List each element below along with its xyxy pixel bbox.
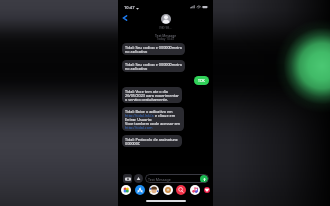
staticText: e clique em (154, 113, 176, 117)
button[interactable]: Tidal: Seu codigo e 000000meira (125, 45, 182, 53)
staticText: no aplicativo (125, 49, 148, 53)
staticText: TDK (198, 78, 205, 83)
staticText: (98) 98… (159, 26, 172, 30)
button[interactable]: Back (120, 13, 130, 23)
button[interactable]: App (204, 187, 210, 193)
button[interactable]: Tidal: Seu codigo e 000000meira (125, 62, 182, 70)
staticText: Today 10:47 (118, 37, 213, 41)
staticText: Text Message (118, 34, 213, 38)
button[interactable]: Text Message (145, 174, 209, 183)
staticText: Text Message (148, 177, 171, 182)
staticText: http://tidal.com (125, 125, 153, 129)
staticText: Tidal: Protocolo de assinatura: (125, 137, 179, 141)
staticText: http://tidal.lnk/a (125, 113, 154, 117)
staticText: 26/05/2023 para experimentar (125, 93, 179, 97)
button[interactable]: App (121, 185, 131, 195)
button[interactable]: App (135, 185, 145, 195)
button[interactable]: App (163, 185, 173, 195)
button[interactable]: App (190, 185, 200, 195)
staticText: o servico gratuitamente. (125, 97, 169, 101)
button[interactable]: Tidal: Voce tem ate o dia (125, 89, 179, 101)
staticText: Tidal: Voce tem ate o dia (125, 89, 168, 93)
button[interactable]: Tidal: Protocolo de assinatura: (125, 137, 179, 145)
staticText: 000000C (125, 141, 141, 145)
staticText: Tidal: Seu codigo e 000000meira (125, 45, 182, 49)
button[interactable]: (98) 98… (118, 14, 213, 30)
staticText: no aplicativo (125, 66, 148, 70)
staticText: Voce tambem pode acessar em (125, 121, 181, 125)
button[interactable]: App (176, 185, 186, 195)
button[interactable]: TDK (194, 76, 209, 85)
button[interactable]: Camera (123, 174, 132, 183)
staticText: Entrar. Usuario: (125, 117, 153, 121)
staticText: Tidal: Seu codigo e 000000meira (125, 62, 182, 66)
staticText: Tidal: Baixe o aplicativo em (125, 109, 173, 113)
button[interactable]: Send (200, 175, 208, 183)
button[interactable]: App (149, 185, 159, 195)
button[interactable]: App Store (134, 174, 143, 183)
button[interactable]: Tidal: Baixe o aplicativo em (125, 109, 181, 129)
staticText: 10:47 (124, 5, 135, 11)
